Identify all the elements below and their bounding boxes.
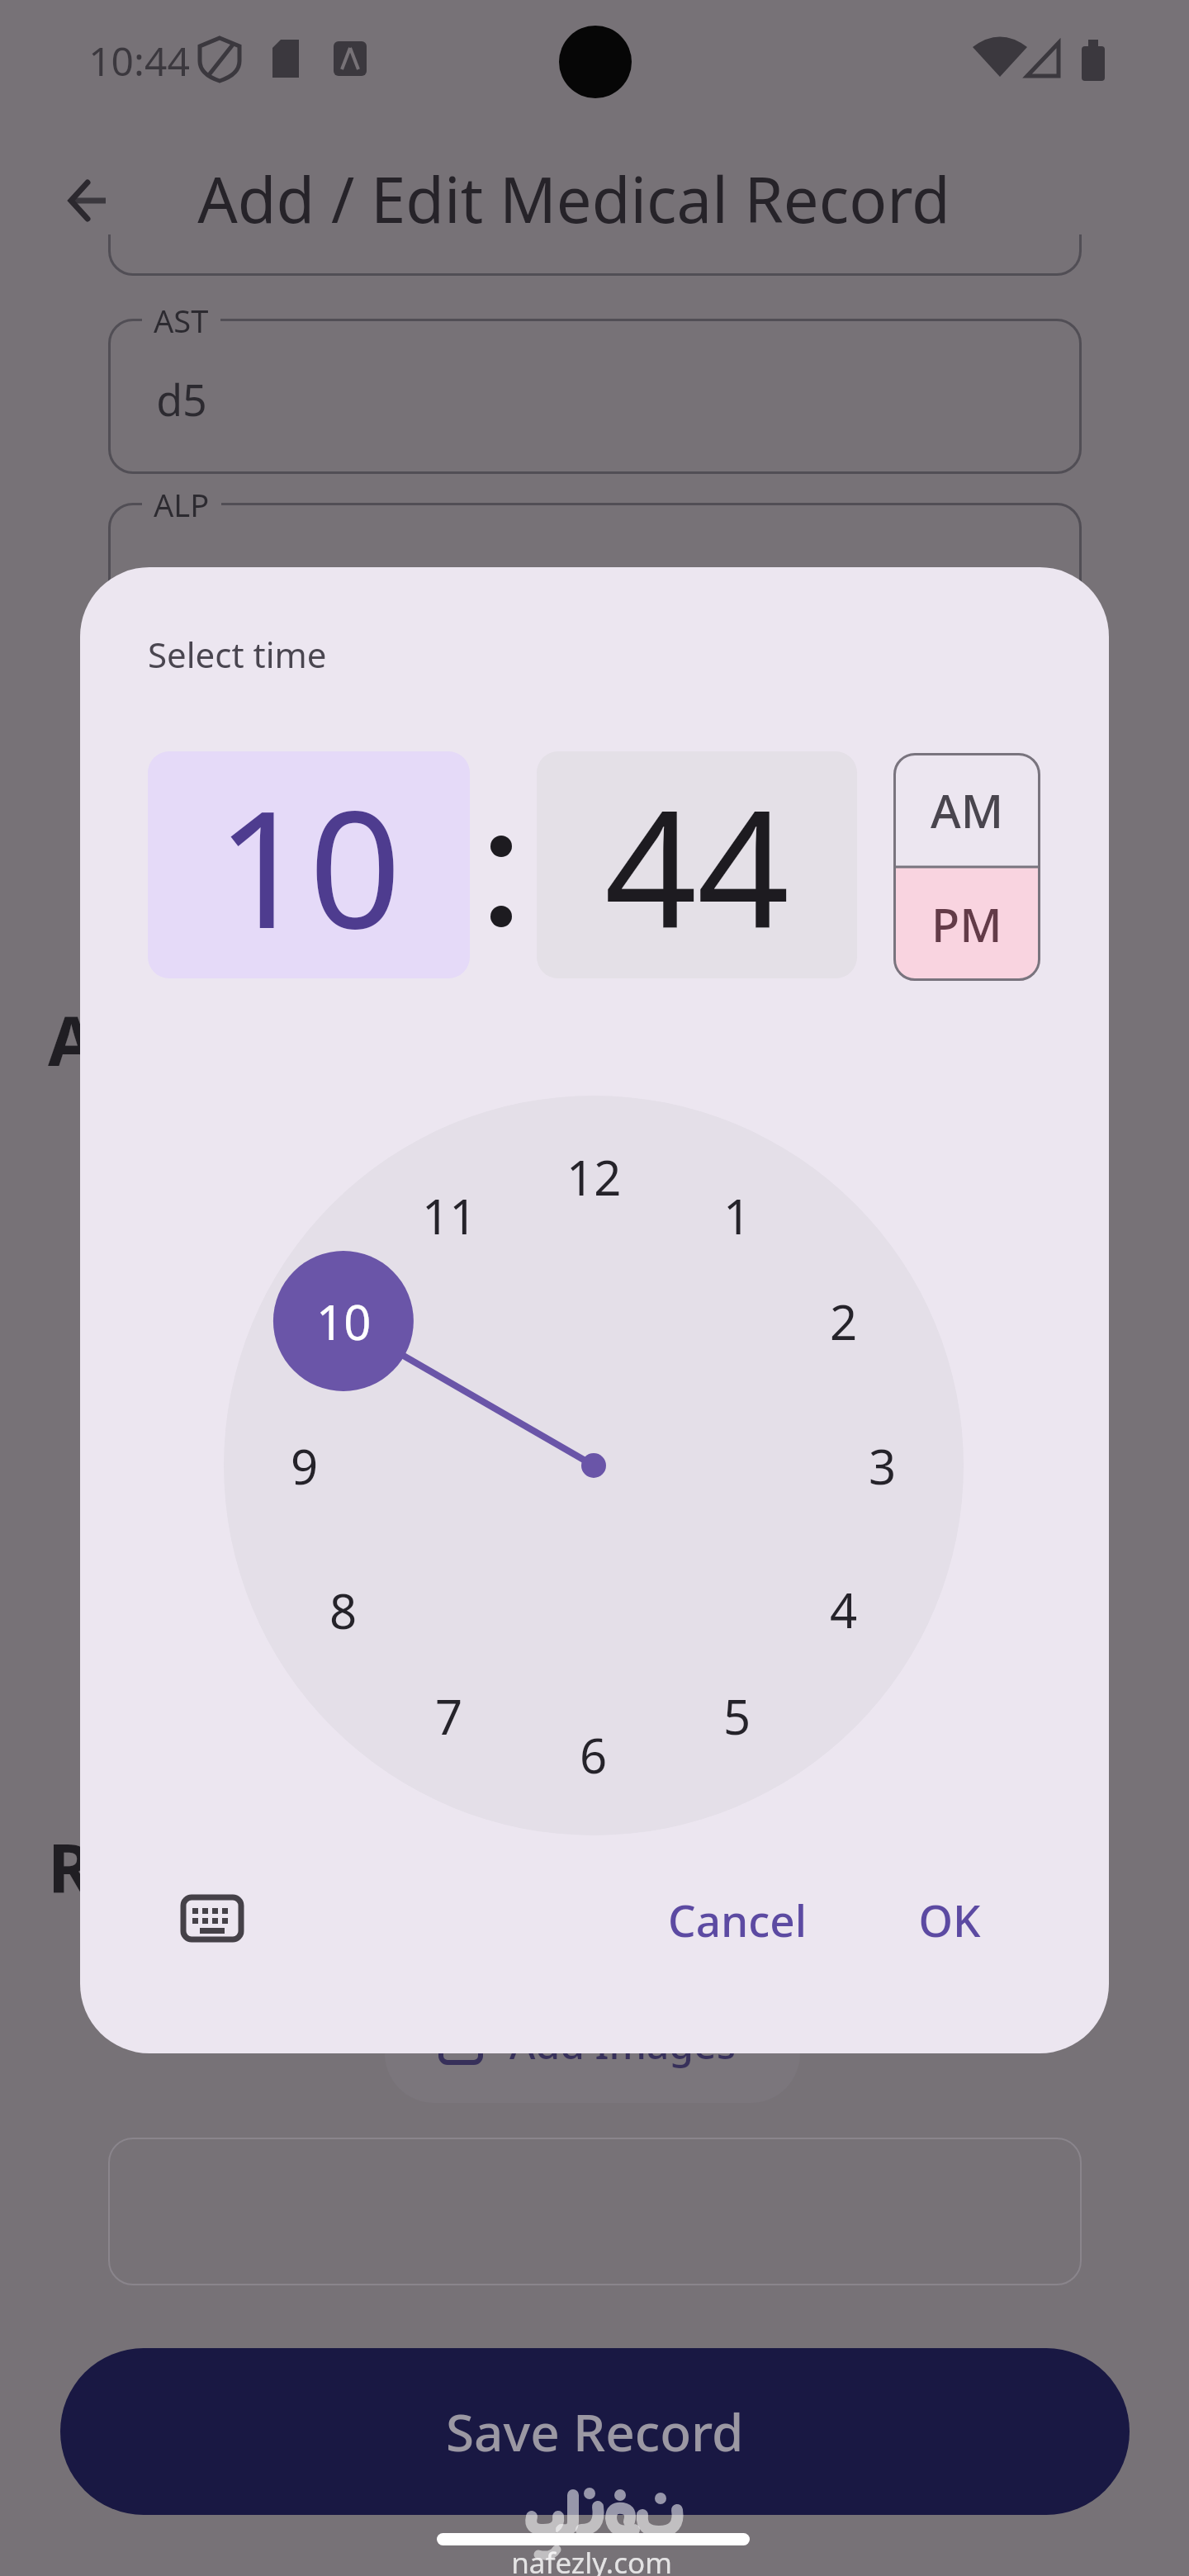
staticText: 11 — [422, 1183, 477, 1248]
staticText: 8 — [329, 1578, 358, 1643]
button[interactable]: AM — [893, 753, 1040, 867]
staticText: OK — [918, 1890, 981, 1949]
button[interactable]: PM — [893, 867, 1040, 981]
button[interactable]: 9 — [255, 1416, 354, 1515]
staticText: d5 — [156, 370, 207, 429]
button[interactable]: 5 — [688, 1666, 787, 1765]
button[interactable]: Add Images — [385, 1977, 800, 2103]
staticText: 4 — [830, 1577, 858, 1642]
staticText: Select time — [148, 631, 327, 678]
button[interactable]: 10 — [294, 1271, 393, 1371]
staticText: PM — [931, 893, 1002, 955]
button[interactable]: 1 — [688, 1166, 787, 1265]
button[interactable] — [108, 319, 1082, 474]
button[interactable]: 11 — [400, 1166, 499, 1265]
button[interactable]: 12 — [544, 1127, 643, 1226]
staticText: 2 — [830, 1289, 858, 1354]
button[interactable]: 44 — [537, 751, 857, 978]
staticText: 1 — [723, 1183, 751, 1248]
button[interactable]: 2 — [794, 1271, 893, 1371]
button[interactable] — [108, 503, 1082, 658]
staticText: Add Images — [509, 2017, 736, 2071]
staticText: AM — [931, 779, 1004, 841]
button[interactable]: 3 — [833, 1416, 932, 1515]
staticText: 12 — [566, 1144, 622, 1210]
staticText: Reports — [48, 1821, 312, 1913]
staticText: 3 — [869, 1433, 897, 1499]
button[interactable]: Save Record — [60, 2348, 1130, 2515]
staticText: 6 — [580, 1722, 608, 1788]
button[interactable]: 4 — [794, 1560, 893, 1659]
button[interactable]: 6 — [544, 1705, 643, 1804]
button[interactable]: 10 — [148, 751, 470, 978]
staticText: 44 — [604, 755, 790, 975]
button[interactable]: 7 — [400, 1666, 499, 1765]
button[interactable]: OK — [883, 1882, 1016, 1957]
staticText: ALP — [154, 483, 210, 526]
staticText: 7 — [435, 1683, 463, 1749]
staticText: 9 — [291, 1433, 319, 1499]
button[interactable] — [50, 175, 124, 233]
button[interactable] — [173, 1885, 252, 1951]
button[interactable]: Cancel — [638, 1882, 836, 1957]
staticText: 10 — [216, 755, 402, 975]
staticText: nafezly.com — [511, 2543, 672, 2576]
staticText: 10:44 — [88, 34, 190, 88]
staticText: Cancel — [668, 1890, 807, 1949]
staticText: AST — [154, 299, 209, 342]
button[interactable]: 8 — [294, 1560, 393, 1660]
staticText: Add / Edit Medical Record — [197, 156, 950, 242]
staticText: Attachments — [48, 993, 487, 1086]
staticText: 10 — [316, 1289, 372, 1354]
staticText: Save Record — [446, 2397, 744, 2466]
staticText: 5 — [723, 1683, 751, 1749]
